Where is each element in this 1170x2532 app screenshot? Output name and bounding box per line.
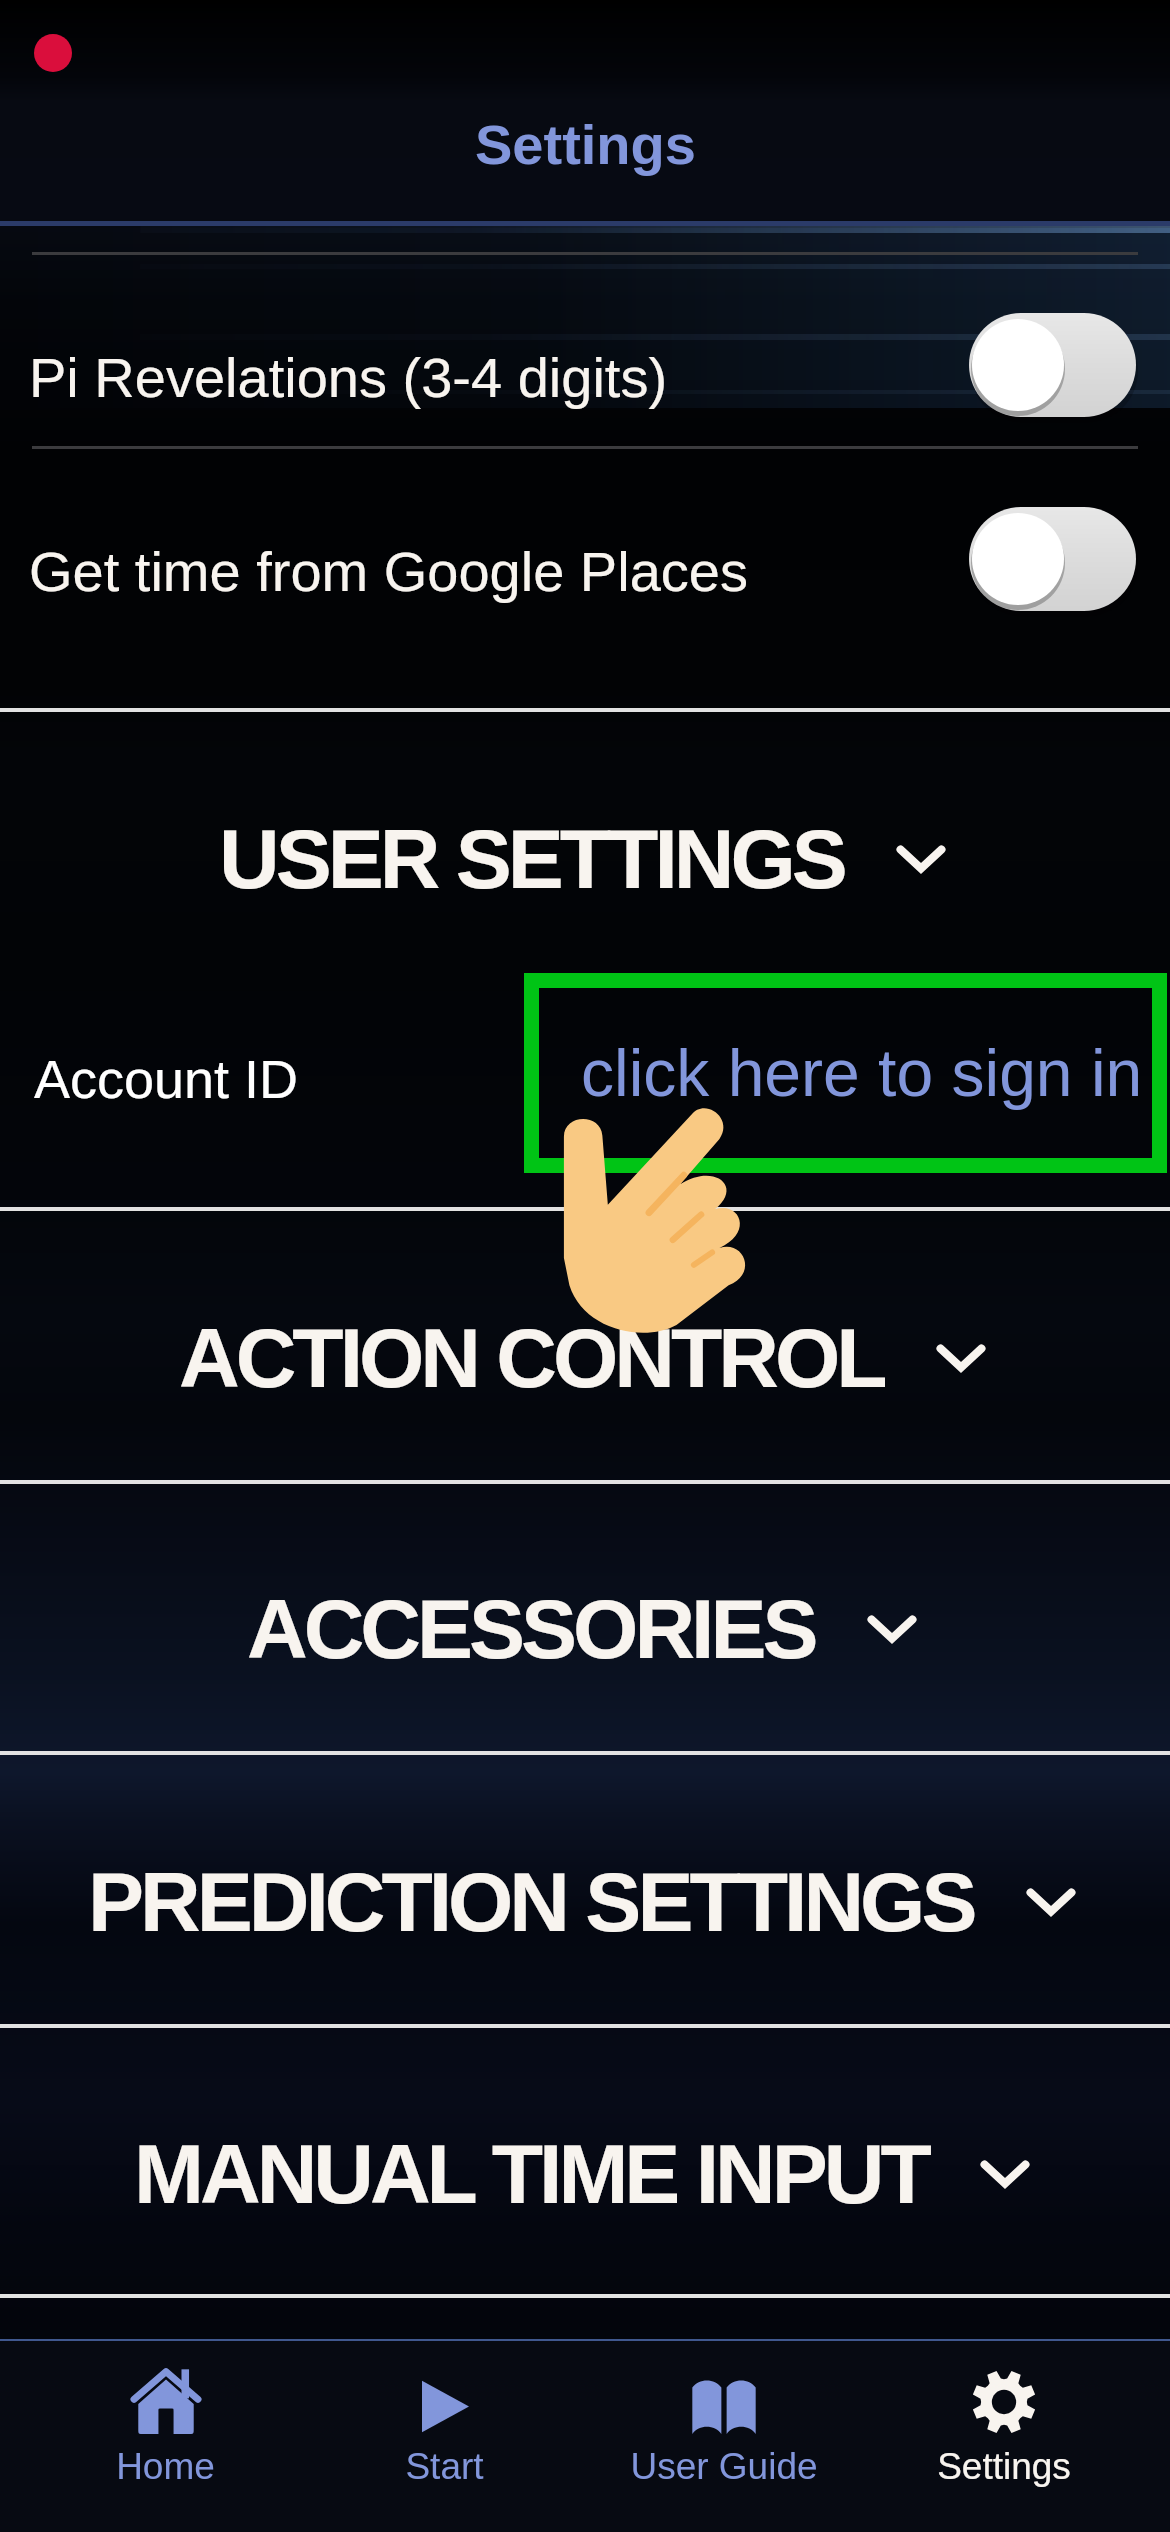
button[interactable]: click here to sign in: [524, 973, 1167, 1173]
staticText: click here to sign in: [581, 1036, 1143, 1110]
staticText: Start: [405, 2446, 484, 2487]
other: Settings: [972, 2370, 1036, 2434]
button[interactable]: MANUAL TIME INPUT: [0, 2064, 1170, 2284]
button[interactable]: Settings: [864, 2332, 1144, 2523]
staticText: ACCESSORIES: [247, 1582, 815, 1676]
staticText: PREDICTION SETTINGS: [88, 1855, 974, 1949]
other: Home: [130, 2368, 202, 2434]
staticText: User Guide: [630, 2446, 818, 2487]
button[interactable]: [0, 253, 1170, 447]
other: Start: [420, 2379, 470, 2434]
button[interactable]: USER SETTINGS: [0, 749, 1170, 969]
staticText: MANUAL TIME INPUT: [134, 2127, 928, 2221]
staticText: USER SETTINGS: [219, 812, 844, 906]
staticText: Settings: [475, 113, 696, 176]
button[interactable]: ACTION CONTROL: [0, 1248, 1170, 1468]
button[interactable]: User Guide: [584, 2332, 864, 2523]
button[interactable]: Toggle Pi Revelations (3-4 digits): [967, 310, 1139, 420]
button[interactable]: Start: [305, 2332, 584, 2523]
other: User Guide: [691, 2378, 757, 2434]
staticText: Home: [116, 2446, 215, 2487]
button[interactable]: Toggle Get time from Google Places: [967, 504, 1139, 614]
button[interactable]: Home: [26, 2332, 305, 2523]
button[interactable]: ACCESSORIES: [0, 1519, 1170, 1739]
button[interactable]: Account ID: [0, 973, 1170, 1173]
staticText: Account ID: [34, 1049, 299, 1109]
button[interactable]: PREDICTION SETTINGS: [0, 1792, 1170, 2012]
staticText: Settings: [937, 2446, 1071, 2487]
staticText: Get time from Google Places: [29, 540, 748, 603]
staticText: Pi Revelations (3-4 digits): [29, 346, 668, 409]
button[interactable]: [0, 447, 1170, 641]
staticText: ACTION CONTROL: [179, 1311, 884, 1405]
